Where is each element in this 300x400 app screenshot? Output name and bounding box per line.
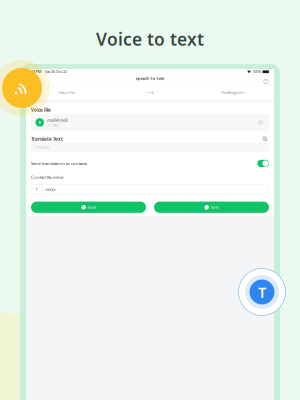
staticText: Send	[87, 204, 95, 210]
staticText: Voice File	[59, 90, 75, 96]
staticText: Text(English)	[221, 90, 242, 96]
button[interactable]: Remove file	[256, 118, 264, 126]
button[interactable]: Send translations to contacts	[26, 159, 274, 168]
staticText: Send	[210, 204, 218, 210]
staticText: ?	[265, 79, 267, 84]
staticText: mp3-4.mp3	[47, 117, 67, 123]
button[interactable]: Copy text	[261, 135, 269, 143]
button[interactable]: Voice File	[26, 85, 109, 100]
button[interactable]: Help	[262, 77, 270, 85]
staticText: Voice to text	[96, 25, 204, 53]
staticText: Sat 26 Oct 22	[45, 69, 67, 74]
staticText: xxxxx	[45, 186, 55, 192]
button[interactable]: Send	[154, 202, 269, 213]
staticText: 2.1 MB	[47, 123, 58, 128]
staticText: Textarea	[36, 145, 49, 150]
staticText: 1	[35, 186, 37, 192]
staticText: ▾	[243, 91, 244, 95]
staticText: Translate Text	[31, 135, 63, 142]
staticText: 14 PM	[31, 69, 41, 74]
staticText: Voice File	[31, 106, 51, 113]
staticText: 100%	[252, 69, 261, 74]
staticText: T	[258, 280, 266, 304]
button[interactable]: Text(English)	[191, 85, 274, 100]
button[interactable]: Send	[31, 202, 146, 213]
staticText: speech to text	[135, 75, 164, 82]
staticText: Send translations to contacts	[31, 160, 87, 167]
staticText: Contact Number	[31, 174, 64, 181]
